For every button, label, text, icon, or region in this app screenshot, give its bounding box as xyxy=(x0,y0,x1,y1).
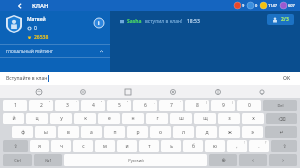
staticText: КЛАН xyxy=(32,2,49,10)
button[interactable]: в xyxy=(58,126,79,138)
button[interactable]: ⌫ xyxy=(266,113,297,124)
button[interactable]: а xyxy=(81,126,102,138)
button[interactable]: Ctrl xyxy=(3,154,32,166)
button[interactable]: 4 xyxy=(81,100,105,111)
staticText: ц xyxy=(35,115,39,122)
button[interactable]: э xyxy=(242,126,263,138)
staticText: к xyxy=(84,115,87,122)
button[interactable]: ш xyxy=(170,113,192,124)
button[interactable]: 5 xyxy=(107,100,131,111)
button[interactable]: 607 xyxy=(279,2,296,9)
button[interactable]: Emoji xyxy=(32,85,45,98)
button[interactable]: ю xyxy=(205,140,225,152)
button[interactable]: ф xyxy=(12,126,33,138)
button[interactable]: п xyxy=(104,126,125,138)
button[interactable]: 2/3 xyxy=(267,14,294,25)
button[interactable]: ы xyxy=(35,126,56,138)
button[interactable]: Back xyxy=(14,0,25,11)
button[interactable]: , xyxy=(227,140,247,152)
button[interactable]: ж xyxy=(219,126,240,138)
button[interactable]: г xyxy=(146,113,168,124)
staticText: 0 xyxy=(248,102,251,109)
button[interactable]: Clipboard xyxy=(121,85,134,98)
button[interactable]: е xyxy=(98,113,120,124)
button[interactable]: н xyxy=(122,113,144,124)
button[interactable]: м xyxy=(95,140,115,152)
button[interactable]: › xyxy=(269,154,297,166)
button[interactable]: ⊕ xyxy=(209,154,237,166)
button[interactable]: ↵ xyxy=(265,126,297,138)
staticText: 3 xyxy=(66,102,69,109)
staticText: ы xyxy=(44,129,48,136)
button[interactable]: ⇧ xyxy=(3,140,28,152)
button[interactable]: к xyxy=(74,113,96,124)
staticText: щ xyxy=(203,115,208,122)
staticText: 5 xyxy=(118,102,121,109)
staticText: ж xyxy=(228,129,232,136)
button[interactable]: Settings xyxy=(166,85,179,98)
button[interactable]: 7 xyxy=(159,100,183,111)
staticText: 9 xyxy=(222,102,225,109)
staticText: 18:53 xyxy=(187,18,200,25)
button[interactable]: ‹ xyxy=(239,154,267,166)
staticText: ' xyxy=(76,101,77,105)
button[interactable]: б xyxy=(183,140,203,152)
staticText: о xyxy=(159,129,162,136)
button[interactable]: Translate xyxy=(211,85,224,98)
button[interactable]: ч xyxy=(51,140,71,152)
button[interactable]: 9 xyxy=(233,2,246,9)
staticText: ' xyxy=(180,101,181,105)
button[interactable]: ⇧ xyxy=(271,140,297,152)
staticText: вступил в клан! xyxy=(145,18,183,25)
staticText: 2 xyxy=(40,102,43,109)
button[interactable]: я xyxy=(30,140,49,152)
button[interactable]: з xyxy=(218,113,240,124)
button[interactable]: №1 xyxy=(34,154,62,166)
button[interactable]: 2 xyxy=(29,100,53,111)
button[interactable]: Русский xyxy=(64,154,207,166)
staticText: е xyxy=(108,115,111,122)
button[interactable]: 8 xyxy=(185,100,209,111)
button[interactable]: о xyxy=(150,126,171,138)
button[interactable]: 0 xyxy=(237,100,261,111)
staticText: Ctrl xyxy=(14,158,21,163)
staticText: ⇧ xyxy=(282,143,287,149)
staticText: ! xyxy=(244,141,245,145)
button[interactable]: 0 xyxy=(246,2,259,9)
button[interactable]: . xyxy=(249,140,269,152)
staticText: ) xyxy=(232,101,233,105)
button[interactable]: д xyxy=(196,126,217,138)
button[interactable]: OK xyxy=(280,74,294,83)
button[interactable]: 3 xyxy=(55,100,79,111)
button[interactable]: т xyxy=(139,140,159,152)
button[interactable]: 1147 xyxy=(259,2,279,9)
button[interactable]: 9 xyxy=(211,100,235,111)
button[interactable]: р xyxy=(127,126,148,138)
button[interactable]: GIF xyxy=(76,85,89,98)
button[interactable]: л xyxy=(173,126,194,138)
staticText: р xyxy=(136,129,140,136)
button[interactable]: ь xyxy=(161,140,181,152)
button[interactable]: ГЛОБАЛЬНЫЙ РЕЙТИНГ xyxy=(6,45,104,57)
button[interactable]: с xyxy=(73,140,93,152)
staticText: з xyxy=(228,115,231,122)
button[interactable]: 1 xyxy=(3,100,27,111)
button[interactable]: щ xyxy=(194,113,216,124)
staticText: №1 xyxy=(45,158,52,163)
button[interactable]: й xyxy=(3,113,24,124)
staticText: 26538 xyxy=(34,34,49,41)
button[interactable]: ц xyxy=(26,113,48,124)
staticText: д xyxy=(205,129,209,136)
button[interactable]: Info xyxy=(94,18,104,28)
button[interactable]: Матвей xyxy=(6,15,110,41)
button[interactable]: у xyxy=(50,113,72,124)
button[interactable]: More xyxy=(255,85,268,98)
button[interactable]: х xyxy=(242,113,264,124)
staticText: г xyxy=(156,115,159,122)
button[interactable]: и xyxy=(117,140,137,152)
button[interactable]: Sasha xyxy=(120,18,300,25)
button[interactable]: 6 xyxy=(133,100,157,111)
staticText: 9 xyxy=(242,3,245,8)
staticText: ( xyxy=(206,101,207,105)
button[interactable]: Del xyxy=(263,100,297,111)
